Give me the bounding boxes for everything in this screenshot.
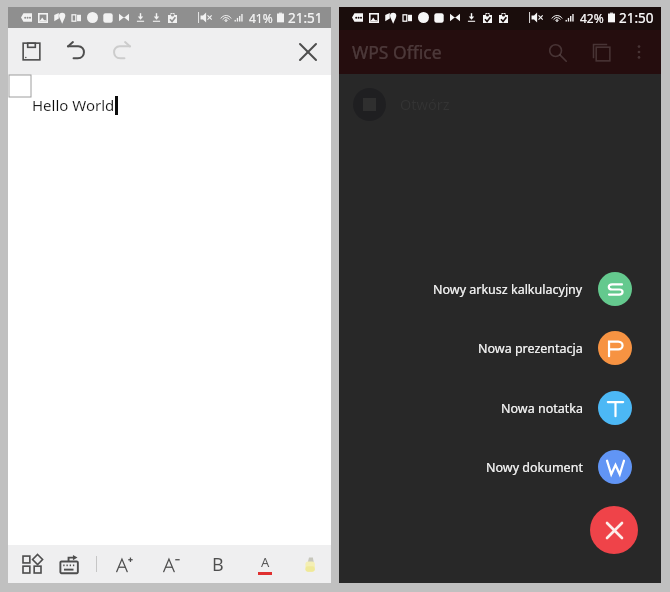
button[interactable]: Nowy arkusz kalkulacyjny [339, 272, 661, 306]
button[interactable]: Nowa prezentacja [339, 331, 661, 365]
button[interactable]: Increase font size [107, 545, 141, 583]
staticText: 21:51 [288, 9, 323, 27]
button[interactable]: Redo [101, 28, 141, 75]
button[interactable]: Tools [15, 545, 49, 583]
staticText: B [212, 552, 224, 577]
staticText: Hello World! [32, 95, 119, 115]
button[interactable]: Undo [56, 28, 96, 75]
staticText: Nowa prezentacja [478, 340, 583, 357]
button[interactable]: Decrease font size [154, 545, 188, 583]
staticText: 21:50 [619, 9, 654, 27]
button[interactable]: Nowy dokument [339, 450, 661, 484]
button[interactable]: Nowa notatka [339, 391, 661, 425]
button[interactable]: Font colour [248, 545, 282, 583]
button[interactable]: Close menu [590, 506, 638, 554]
button[interactable]: Save [11, 28, 51, 75]
button[interactable]: Hide keyboard [52, 545, 86, 583]
button[interactable]: More options [623, 36, 655, 68]
button[interactable]: Recent files [579, 30, 623, 74]
staticText: WPS Office [352, 40, 442, 64]
staticText: 41% [249, 10, 273, 26]
staticText: Nowy arkusz kalkulacyjny [433, 281, 583, 298]
button[interactable]: Highlight [293, 545, 327, 583]
staticText: Nowy dokument [486, 459, 583, 476]
staticText: Nowa notatka [501, 400, 583, 417]
button[interactable]: Close [288, 28, 328, 75]
staticText: Otwórz [400, 94, 450, 114]
staticText: A [261, 553, 270, 571]
button[interactable]: Bold [201, 545, 235, 583]
staticText: 42% [580, 10, 604, 26]
button[interactable]: Search [535, 30, 579, 74]
